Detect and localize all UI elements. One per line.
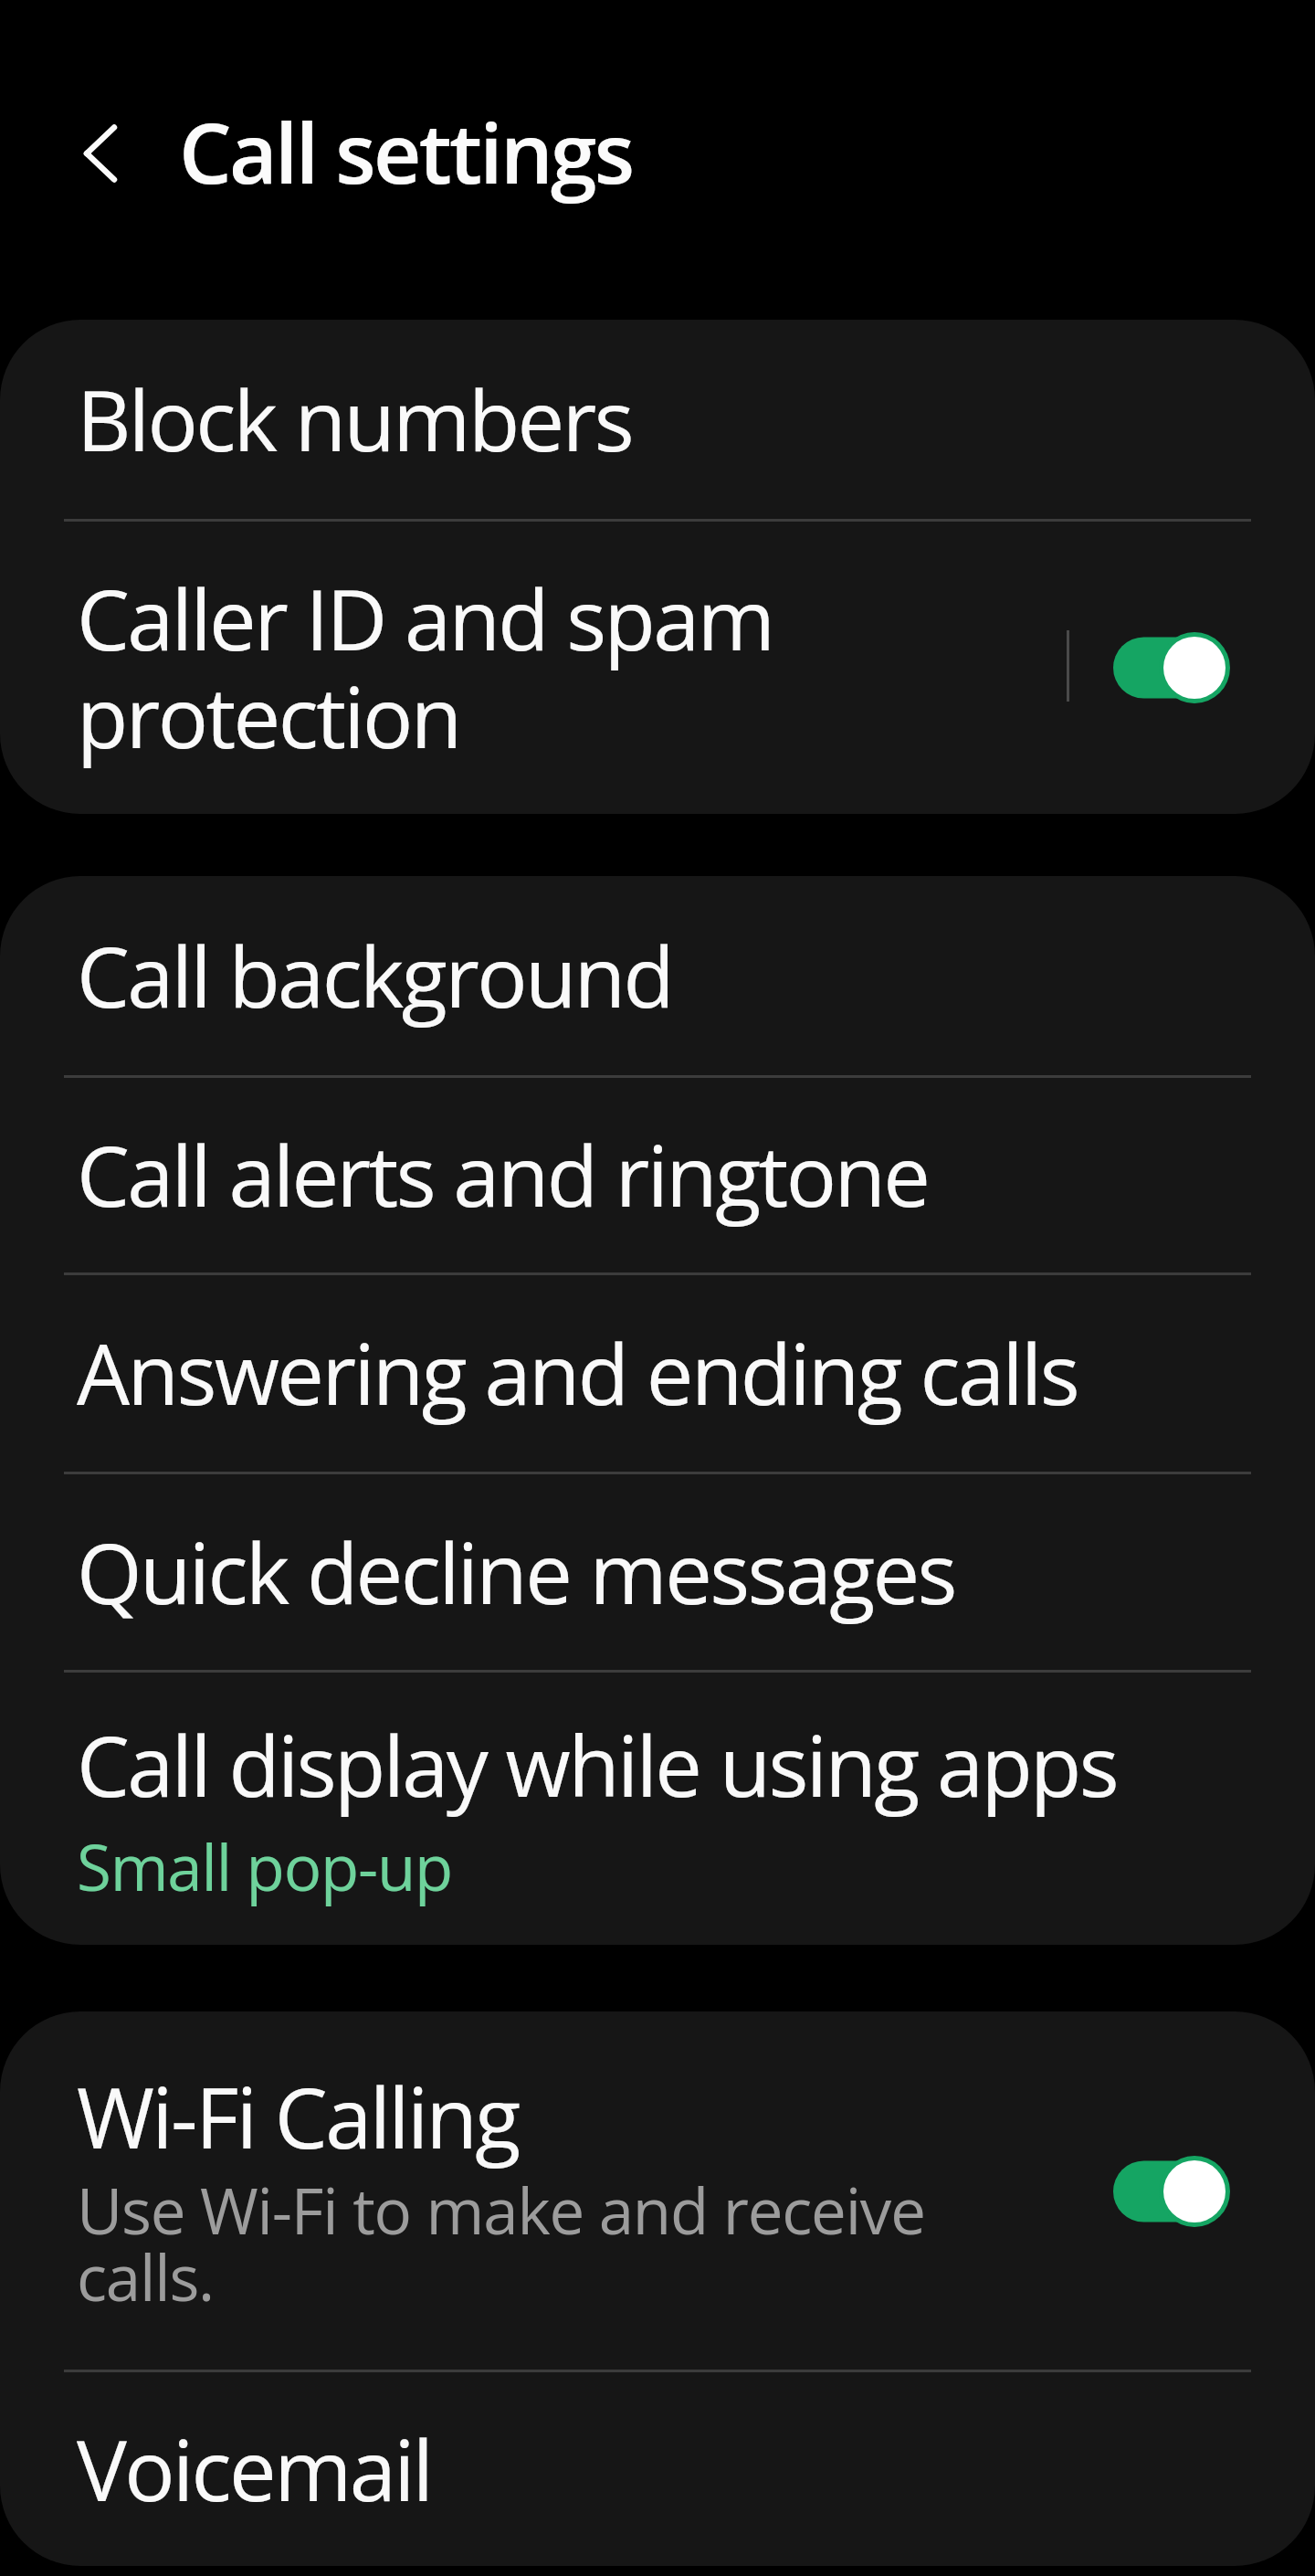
button[interactable]: Block numbers: [0, 320, 1315, 519]
button[interactable]: Call background: [0, 876, 1315, 1075]
staticText: Quick decline messages: [77, 1527, 955, 1625]
staticText: Caller ID and spam protection: [77, 574, 773, 769]
staticText: Answering and ending calls: [77, 1328, 1078, 1426]
button[interactable]: Call display while using apps: [0, 1673, 1315, 1945]
button[interactable]: Wi-Fi Calling: [0, 2011, 1315, 2370]
button[interactable]: Call alerts and ringtone: [0, 1078, 1315, 1272]
button[interactable]: Voicemail: [0, 2372, 1315, 2566]
button[interactable]: Wi-Fi Calling switch: [1096, 2155, 1229, 2228]
staticText: Use Wi-Fi to make and receive calls.: [77, 2182, 925, 2316]
staticText: Small pop-up: [77, 1823, 453, 1909]
staticText: Call alerts and ringtone: [77, 1130, 929, 1228]
staticText: Voicemail: [77, 2424, 432, 2522]
staticText: Call background: [77, 931, 673, 1029]
button[interactable]: Caller ID and spam protection: [1096, 631, 1229, 704]
staticText: Block numbers: [77, 375, 632, 472]
button[interactable]: Answering and ending calls: [0, 1275, 1315, 1472]
button[interactable]: Caller ID and spam protection: [0, 522, 1041, 814]
staticText: Wi-Fi Calling: [77, 2072, 519, 2170]
button[interactable]: Quick decline messages: [0, 1474, 1315, 1670]
staticText: Call display while using apps: [77, 1720, 1118, 1818]
staticText: Call settings: [179, 95, 633, 208]
button[interactable]: Navigate up: [44, 97, 157, 210]
